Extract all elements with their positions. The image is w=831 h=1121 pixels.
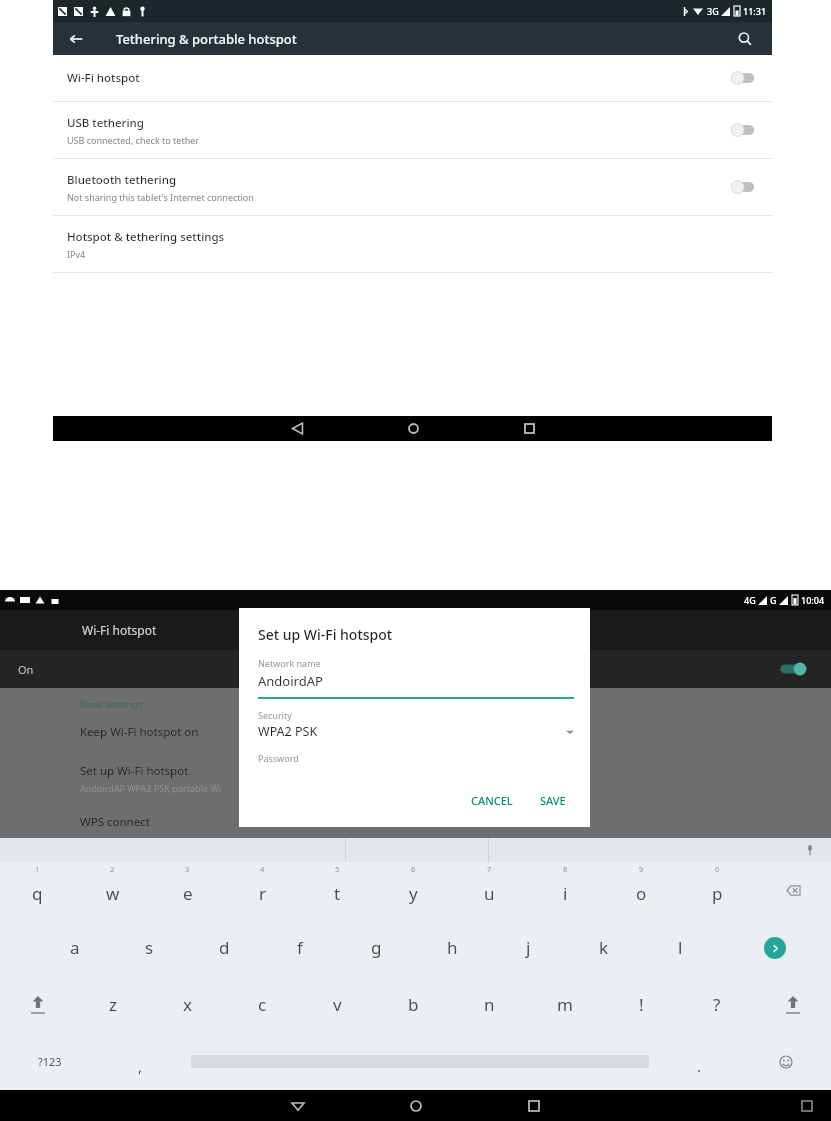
staticText: x: [183, 993, 192, 1016]
staticText: 8: [563, 864, 568, 874]
staticText: b: [408, 993, 419, 1016]
button[interactable]: Space: [181, 1033, 658, 1090]
button[interactable]: Switch keyboard: [797, 1096, 817, 1116]
staticText: k: [599, 936, 609, 959]
button[interactable]: 3: [150, 862, 225, 919]
button[interactable]: ?: [679, 976, 755, 1033]
button[interactable]: Shift: [0, 976, 75, 1033]
button[interactable]: Toggle: [728, 70, 758, 86]
button[interactable]: v: [300, 976, 375, 1033]
button[interactable]: USB tethering: [53, 102, 772, 158]
button[interactable]: Bluetooth tethering: [53, 159, 772, 215]
staticText: G: [770, 594, 777, 606]
staticText: Network name: [258, 657, 321, 669]
staticText: 10:04: [801, 594, 825, 606]
staticText: Tethering & portable hotspot: [116, 30, 297, 48]
button[interactable]: 5: [300, 862, 375, 919]
button[interactable]: 7: [451, 862, 527, 919]
button[interactable]: Hide keyboard: [276, 1090, 320, 1121]
button[interactable]: WPA2 PSK: [258, 723, 574, 740]
staticText: WPA2 PSK: [258, 723, 318, 740]
staticText: USB tethering: [67, 115, 144, 131]
button[interactable]: m: [527, 976, 603, 1033]
button[interactable]: CANCEL: [463, 788, 521, 813]
button[interactable]: g: [338, 919, 414, 976]
staticText: SAVE: [540, 793, 566, 808]
button[interactable]: 6: [375, 862, 451, 919]
staticText: .: [697, 1056, 702, 1076]
button[interactable]: Shift: [755, 976, 831, 1033]
button[interactable]: f: [262, 919, 338, 976]
button[interactable]: Recents: [509, 416, 549, 441]
staticText: n: [484, 993, 495, 1016]
staticText: p: [712, 882, 723, 905]
button[interactable]: n: [451, 976, 527, 1033]
button[interactable]: On: [0, 650, 831, 688]
button[interactable]: Emoji: [740, 1033, 831, 1090]
staticText: AndoirdAP WPA2 PSK portable Wi: [80, 782, 222, 794]
staticText: 6: [411, 864, 416, 874]
button[interactable]: Keep Wi-Fi hotspot on: [80, 724, 199, 740]
button[interactable]: Wi-Fi hotspot: [53, 55, 772, 101]
button[interactable]: Back: [277, 416, 317, 441]
button[interactable]: ?123: [0, 1033, 99, 1090]
button[interactable]: Home: [394, 1090, 438, 1121]
staticText: 4: [260, 864, 265, 874]
button[interactable]: 0: [679, 862, 755, 919]
button[interactable]: Toggle: [728, 179, 758, 195]
staticText: m: [557, 993, 573, 1016]
staticText: On: [18, 662, 34, 677]
staticText: 3: [185, 864, 190, 874]
staticText: !: [639, 993, 644, 1016]
button[interactable]: Password: [258, 752, 299, 764]
button[interactable]: h: [414, 919, 490, 976]
staticText: Wi-Fi hotspot: [82, 622, 157, 638]
staticText: Security: [258, 709, 292, 721]
staticText: w: [106, 882, 120, 905]
staticText: c: [258, 993, 267, 1016]
staticText: 11:31: [743, 5, 767, 17]
button[interactable]: Back: [63, 26, 89, 52]
button[interactable]: 4: [225, 862, 300, 919]
staticText: o: [636, 882, 647, 905]
staticText: Set up Wi-Fi hotspot: [258, 625, 393, 644]
button[interactable]: s: [112, 919, 187, 976]
button[interactable]: d: [187, 919, 262, 976]
staticText: q: [32, 882, 43, 905]
button[interactable]: a: [37, 919, 112, 976]
button[interactable]: !: [603, 976, 679, 1033]
staticText: j: [526, 936, 531, 959]
button[interactable]: j: [490, 919, 566, 976]
button[interactable]: Wi-Fi hotspot on: [777, 661, 809, 677]
button[interactable]: Recents: [512, 1090, 556, 1121]
button[interactable]: Search: [732, 26, 758, 52]
button[interactable]: Home: [393, 416, 433, 441]
staticText: i: [563, 882, 568, 905]
button[interactable]: WPS connect: [80, 814, 150, 830]
button[interactable]: b: [375, 976, 451, 1033]
button[interactable]: c: [225, 976, 300, 1033]
staticText: CANCEL: [471, 793, 513, 808]
button[interactable]: l: [642, 919, 718, 976]
button[interactable]: 2: [75, 862, 150, 919]
button[interactable]: 9: [603, 862, 679, 919]
staticText: 7: [487, 864, 492, 874]
button[interactable]: z: [75, 976, 150, 1033]
button[interactable]: 1: [0, 862, 75, 919]
button[interactable]: ,: [99, 1033, 181, 1090]
button[interactable]: AndoirdAP: [258, 672, 323, 690]
button[interactable]: Next: [718, 919, 831, 976]
staticText: ?: [713, 993, 721, 1016]
button[interactable]: Hotspot & tethering settings: [53, 216, 772, 272]
button[interactable]: Backspace: [755, 862, 831, 919]
button[interactable]: Voice input: [801, 841, 819, 859]
button[interactable]: Set up Wi-Fi hotspot: [80, 763, 189, 779]
staticText: t: [334, 882, 341, 905]
button[interactable]: SAVE: [532, 788, 574, 813]
staticText: z: [109, 993, 117, 1016]
button[interactable]: .: [658, 1033, 740, 1090]
button[interactable]: 8: [527, 862, 603, 919]
button[interactable]: k: [566, 919, 642, 976]
button[interactable]: x: [150, 976, 225, 1033]
button[interactable]: Toggle: [728, 122, 758, 138]
